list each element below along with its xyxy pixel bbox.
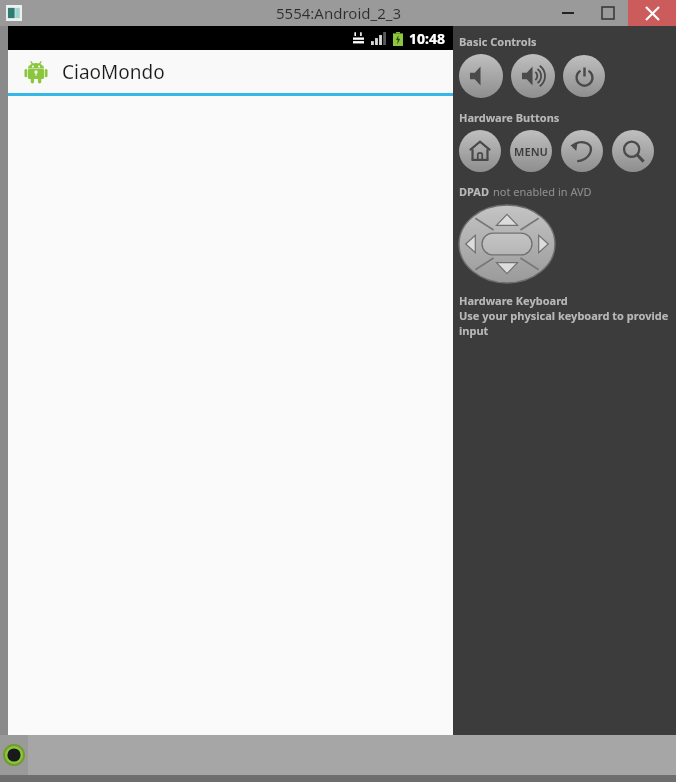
button[interactable]: Close	[628, 0, 676, 26]
button[interactable]: Maximize	[588, 0, 628, 26]
staticText: 10:48	[409, 29, 445, 48]
staticText: Use your physical keyboard to provide in…	[459, 308, 676, 338]
button[interactable]: Minimize	[548, 0, 588, 26]
button[interactable]: Power	[563, 55, 605, 97]
staticText: 5554:Android_2_3	[276, 3, 401, 23]
staticText: DPAD	[459, 184, 489, 199]
button[interactable]: D-pad	[459, 205, 555, 283]
button[interactable]: Menu	[510, 130, 552, 172]
staticText: CiaoMondo	[62, 59, 165, 85]
button[interactable]: Volume down	[459, 54, 503, 98]
staticText: Hardware Buttons	[459, 110, 560, 125]
staticText: Hardware Keyboard	[459, 293, 568, 308]
button[interactable]: CiaoMondo	[8, 50, 453, 93]
button[interactable]: Volume up	[511, 54, 555, 98]
button[interactable]: Home	[459, 130, 501, 172]
button[interactable]: Back	[561, 130, 603, 172]
button[interactable]: Search	[612, 130, 654, 172]
staticText: MENU	[514, 144, 548, 159]
staticText: Basic Controls	[459, 34, 537, 49]
staticText: not enabled in AVD	[493, 184, 592, 199]
